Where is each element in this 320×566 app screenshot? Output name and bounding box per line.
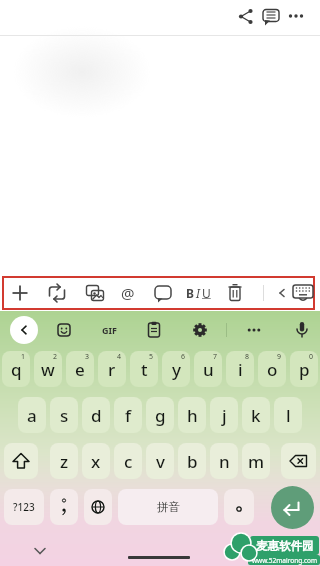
- button[interactable]: [140, 316, 168, 344]
- staticText: o: [267, 358, 278, 381]
- staticText: 9: [277, 352, 282, 362]
- staticText: f: [125, 404, 132, 427]
- staticText: 3: [85, 352, 90, 362]
- staticText: k: [251, 404, 261, 427]
- button[interactable]: [224, 489, 254, 525]
- staticText: h: [187, 404, 198, 427]
- button[interactable]: r: [98, 351, 126, 387]
- button[interactable]: [50, 489, 78, 525]
- staticText: 麦惠软件园: [256, 539, 314, 553]
- button[interactable]: ?123: [4, 489, 44, 525]
- button[interactable]: y: [162, 351, 190, 387]
- button[interactable]: [50, 316, 78, 344]
- staticText: z: [60, 450, 69, 473]
- staticText: n: [219, 450, 230, 473]
- button[interactable]: GIF: [97, 318, 121, 342]
- button[interactable]: [4, 443, 38, 479]
- button[interactable]: [186, 316, 214, 344]
- button[interactable]: t: [130, 351, 158, 387]
- staticText: j: [222, 404, 227, 427]
- button[interactable]: [149, 279, 177, 307]
- staticText: a: [27, 404, 37, 427]
- staticText: m: [248, 450, 265, 473]
- staticText: w: [41, 358, 55, 381]
- staticText: c: [124, 450, 133, 473]
- staticText: 2: [53, 352, 58, 362]
- staticText: 4: [117, 352, 122, 362]
- staticText: 6: [181, 352, 186, 362]
- button[interactable]: j: [210, 397, 238, 433]
- staticText: b: [187, 450, 198, 473]
- staticText: l: [286, 404, 291, 427]
- staticText: GIF: [102, 324, 117, 336]
- staticText: 拼音: [157, 500, 180, 514]
- button[interactable]: g: [146, 397, 174, 433]
- button[interactable]: d: [82, 397, 110, 433]
- button[interactable]: [28, 539, 52, 563]
- button[interactable]: l: [274, 397, 302, 433]
- button[interactable]: 拼音: [118, 489, 218, 525]
- button[interactable]: z: [50, 443, 78, 479]
- button[interactable]: B: [186, 281, 216, 305]
- staticText: y: [172, 358, 181, 381]
- button[interactable]: w: [34, 351, 62, 387]
- staticText: d: [91, 404, 102, 427]
- staticText: v: [156, 450, 165, 473]
- button[interactable]: o: [258, 351, 286, 387]
- button[interactable]: [257, 2, 285, 30]
- staticText: p: [299, 358, 310, 381]
- button[interactable]: k: [242, 397, 270, 433]
- staticText: g: [155, 404, 166, 427]
- staticText: t: [141, 358, 148, 381]
- button[interactable]: p: [290, 351, 318, 387]
- button[interactable]: [240, 316, 268, 344]
- staticText: s: [60, 404, 69, 427]
- button[interactable]: a: [18, 397, 46, 433]
- button[interactable]: u: [194, 351, 222, 387]
- button[interactable]: [232, 2, 260, 30]
- button[interactable]: x: [82, 443, 110, 479]
- button[interactable]: v: [146, 443, 174, 479]
- staticText: 0: [309, 352, 314, 362]
- button[interactable]: [271, 486, 314, 529]
- staticText: r: [108, 358, 116, 381]
- staticText: q: [11, 358, 22, 381]
- staticText: u: [203, 358, 214, 381]
- staticText: U: [202, 285, 211, 301]
- button[interactable]: [43, 279, 71, 307]
- button[interactable]: [289, 279, 317, 307]
- button[interactable]: s: [50, 397, 78, 433]
- button[interactable]: [10, 316, 38, 344]
- button[interactable]: [81, 279, 109, 307]
- staticText: @: [121, 283, 135, 303]
- button[interactable]: b: [178, 443, 206, 479]
- button[interactable]: [84, 489, 112, 525]
- staticText: 5: [149, 352, 154, 362]
- button[interactable]: [281, 443, 316, 479]
- staticText: 7: [213, 352, 218, 362]
- staticText: i: [238, 358, 243, 381]
- staticText: I: [196, 285, 200, 301]
- button[interactable]: m: [242, 443, 270, 479]
- button[interactable]: f: [114, 397, 142, 433]
- button[interactable]: [288, 316, 316, 344]
- staticText: www.52mairong.com: [252, 556, 318, 565]
- button[interactable]: e: [66, 351, 94, 387]
- staticText: x: [91, 450, 101, 473]
- staticText: ?123: [13, 500, 35, 514]
- button[interactable]: c: [114, 443, 142, 479]
- button[interactable]: @: [116, 281, 140, 305]
- button[interactable]: [221, 279, 249, 307]
- button[interactable]: [6, 279, 34, 307]
- button[interactable]: q: [2, 351, 30, 387]
- button[interactable]: h: [178, 397, 206, 433]
- button[interactable]: i: [226, 351, 254, 387]
- button[interactable]: [272, 283, 292, 303]
- button[interactable]: [282, 2, 310, 30]
- staticText: e: [75, 358, 85, 381]
- staticText: 1: [21, 352, 26, 362]
- button[interactable]: n: [210, 443, 238, 479]
- staticText: 8: [245, 352, 250, 362]
- staticText: B: [186, 285, 194, 301]
